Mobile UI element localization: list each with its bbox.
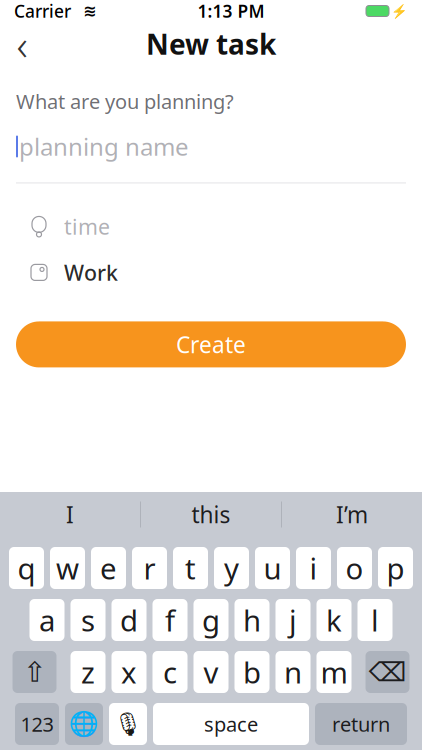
- staticText: w: [56, 548, 79, 587]
- staticText: planning name: [19, 131, 189, 162]
- staticText: 1:13 PM: [197, 0, 264, 22]
- button[interactable]: d: [111, 599, 146, 641]
- staticText: space: [204, 711, 258, 737]
- button[interactable]: n: [275, 651, 310, 693]
- staticText: m: [320, 652, 347, 691]
- button[interactable]: y: [214, 547, 249, 589]
- button[interactable]: time: [16, 203, 406, 249]
- staticText: this: [191, 499, 230, 529]
- staticText: New task: [146, 25, 276, 63]
- staticText: g: [202, 600, 220, 639]
- staticText: q: [17, 548, 35, 587]
- staticText: return: [332, 711, 390, 737]
- button[interactable]: z: [70, 651, 105, 693]
- button[interactable]: Back: [0, 22, 44, 66]
- staticText: u: [263, 548, 281, 587]
- staticText: What are you planning?: [16, 88, 234, 115]
- staticText: h: [243, 600, 261, 639]
- button[interactable]: Next keyboard: [65, 703, 103, 745]
- button[interactable]: t: [173, 547, 208, 589]
- button[interactable]: a: [29, 599, 64, 641]
- staticText: e: [100, 548, 117, 587]
- button[interactable]: Delete: [365, 651, 409, 693]
- button[interactable]: Create: [16, 321, 406, 367]
- staticText: v: [203, 652, 218, 691]
- staticText: ‹: [16, 16, 27, 72]
- button[interactable]: I’m: [282, 492, 422, 536]
- staticText: I: [66, 499, 74, 529]
- button[interactable]: e: [91, 547, 126, 589]
- button[interactable]: u: [255, 547, 290, 589]
- button[interactable]: q: [9, 547, 44, 589]
- button[interactable]: v: [193, 651, 228, 693]
- staticText: Carrier: [14, 0, 71, 22]
- staticText: r: [143, 548, 155, 587]
- staticText: n: [284, 652, 302, 691]
- staticText: s: [81, 600, 95, 639]
- staticText: Work: [64, 258, 118, 287]
- staticText: c: [163, 652, 177, 691]
- button[interactable]: c: [152, 651, 187, 693]
- button[interactable]: 123: [15, 703, 59, 745]
- staticText: 123: [20, 711, 53, 737]
- staticText: l: [371, 600, 379, 639]
- button[interactable]: g: [193, 599, 228, 641]
- staticText: time: [64, 212, 110, 241]
- staticText: ≋: [71, 2, 96, 20]
- staticText: b: [243, 652, 261, 691]
- button[interactable]: o: [337, 547, 372, 589]
- button[interactable]: l: [357, 599, 392, 641]
- staticText: ⇧: [23, 656, 46, 688]
- button[interactable]: x: [111, 651, 146, 693]
- button[interactable]: r: [132, 547, 167, 589]
- button[interactable]: f: [152, 599, 187, 641]
- button[interactable]: return: [315, 703, 407, 745]
- button[interactable]: Dictate: [109, 703, 147, 745]
- button[interactable]: k: [316, 599, 351, 641]
- staticText: o: [345, 548, 363, 587]
- button[interactable]: i: [296, 547, 331, 589]
- staticText: x: [121, 652, 137, 691]
- staticText: p: [386, 548, 404, 587]
- staticText: i: [309, 548, 317, 587]
- staticText: ⚡: [391, 3, 408, 19]
- staticText: Create: [176, 329, 246, 359]
- button[interactable]: I: [0, 492, 140, 536]
- button[interactable]: j: [275, 599, 310, 641]
- button[interactable]: p: [378, 547, 413, 589]
- staticText: I’m: [336, 499, 368, 529]
- staticText: 🎙: [113, 711, 142, 737]
- staticText: j: [289, 600, 297, 639]
- button[interactable]: h: [234, 599, 269, 641]
- staticText: z: [81, 652, 95, 691]
- button[interactable]: b: [234, 651, 269, 693]
- staticText: t: [185, 548, 196, 587]
- staticText: a: [39, 600, 55, 639]
- staticText: f: [165, 600, 175, 639]
- staticText: y: [224, 548, 239, 587]
- staticText: k: [326, 600, 342, 639]
- button[interactable]: w: [50, 547, 85, 589]
- staticText: ⌫: [368, 657, 406, 687]
- staticText: 🌐: [69, 710, 99, 738]
- button[interactable]: Shift: [12, 651, 56, 693]
- button[interactable]: space: [153, 703, 309, 745]
- button[interactable]: m: [316, 651, 351, 693]
- button[interactable]: s: [70, 599, 105, 641]
- staticText: d: [120, 600, 138, 639]
- button[interactable]: this: [141, 492, 281, 536]
- button[interactable]: Work: [16, 249, 406, 295]
